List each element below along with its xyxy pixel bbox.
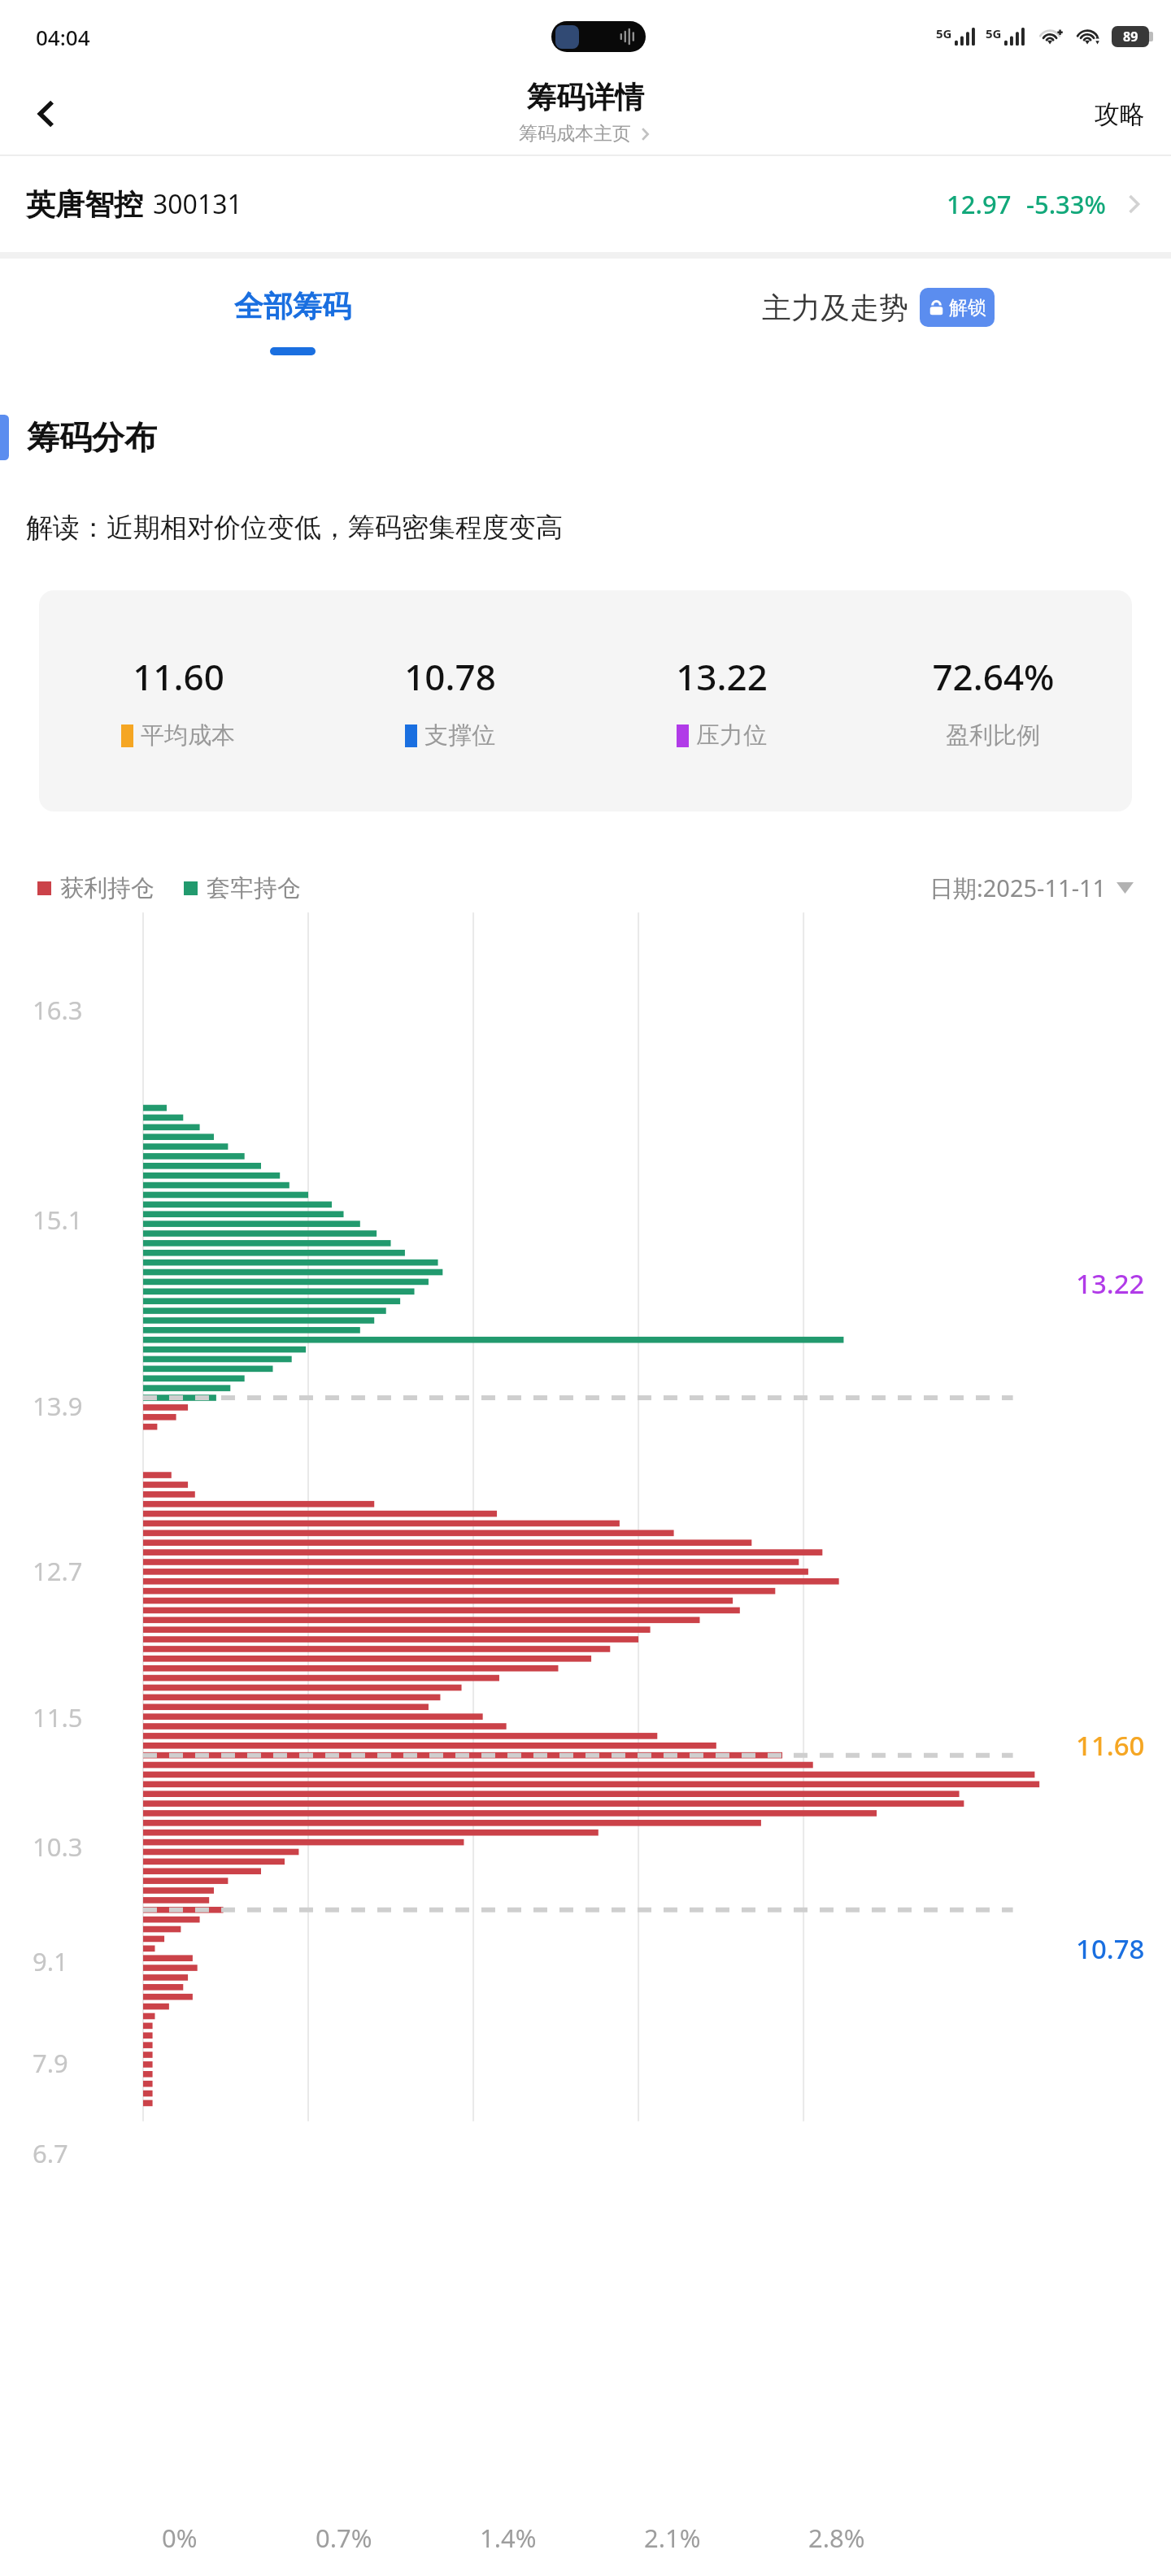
staticText: 6.7 (33, 2136, 68, 2170)
staticText: 主力及走势 (762, 289, 908, 326)
staticText: 7.9 (33, 2046, 68, 2080)
staticText: 盈利比例 (946, 720, 1040, 751)
staticText: 2.1% (644, 2521, 701, 2555)
staticText: 支撑位 (424, 720, 495, 751)
staticText: 0.7% (316, 2521, 372, 2555)
staticText: 5G (936, 25, 952, 41)
staticText: 平均成本 (141, 720, 235, 751)
staticText: 89 (1123, 28, 1138, 46)
staticText: 全部筹码 (234, 288, 351, 324)
button[interactable]: 攻略 (1088, 90, 1151, 138)
staticText: 日期:2025-11-11 (929, 872, 1107, 904)
staticText: 13.9 (33, 1389, 83, 1423)
staticText: 13.22 (676, 652, 768, 701)
staticText: 13.22 (1076, 1265, 1145, 1302)
staticText: 套牢持仓 (207, 873, 301, 903)
button[interactable]: 日期:2025-11-11 (929, 872, 1134, 904)
staticText: 16.3 (33, 993, 83, 1027)
staticText: 10.78 (1076, 1930, 1145, 1967)
staticText: 9.1 (33, 1944, 68, 1978)
staticText: 12.7 (33, 1554, 83, 1588)
button[interactable]: 主力及走势 (585, 288, 1171, 327)
button[interactable]: 英唐智控 (0, 156, 1171, 252)
staticText: 筹码成本主页 (519, 122, 631, 146)
staticText: 04:04 (36, 23, 90, 51)
staticText: 11.60 (1076, 1727, 1145, 1764)
staticText: 英唐智控 (26, 186, 143, 223)
staticText: -5.33% (1026, 187, 1106, 221)
staticText: 300131 (153, 186, 242, 222)
staticText: 获利持仓 (60, 873, 155, 903)
staticText: 5G (986, 25, 1002, 41)
staticText: 10.3 (33, 1830, 83, 1864)
staticText: 10.78 (404, 652, 496, 701)
staticText: 15.1 (33, 1203, 83, 1237)
staticText: 解锁 (949, 296, 986, 320)
staticText: 解读：近期相对价位变低，筹码密集程度变高 (26, 511, 563, 545)
button[interactable]: 全部筹码 (0, 288, 585, 355)
staticText: 12.97 (947, 187, 1012, 221)
button[interactable]: 筹码成本主页 (519, 122, 652, 146)
staticText: 2.8% (808, 2521, 865, 2555)
staticText: 11.5 (33, 1700, 83, 1734)
button[interactable]: 11.60 (39, 590, 1132, 812)
staticText: 1.4% (480, 2521, 537, 2555)
staticText: 筹码分布 (27, 417, 157, 458)
button[interactable]: Back (18, 85, 75, 142)
staticText: 筹码详情 (527, 79, 644, 115)
staticText: 压力位 (696, 720, 767, 751)
staticText: 11.60 (133, 652, 224, 701)
staticText: 72.64% (932, 652, 1055, 701)
staticText: 0% (162, 2521, 198, 2555)
